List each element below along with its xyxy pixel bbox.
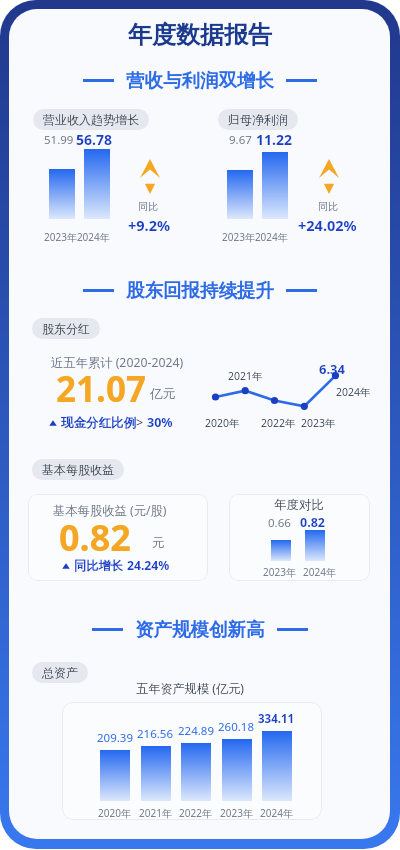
staticText: 营收与利润双增长 (126, 69, 274, 92)
staticText: 21.07 (56, 365, 146, 413)
staticText: 11.22 (256, 130, 292, 149)
staticText: 0.82 (300, 514, 325, 531)
button[interactable]: 年度对比 (229, 494, 370, 581)
button[interactable]: 基本每股收益 (元/股) (28, 494, 208, 581)
staticText: 6.34 (319, 360, 345, 378)
staticText: 24.24% (127, 557, 170, 574)
staticText: 2022年 (261, 416, 296, 430)
staticText: 216.56 (137, 726, 173, 742)
button[interactable]: 归母净利润 (218, 109, 298, 130)
other: Year over year change (140, 159, 160, 194)
staticText: 近五年累计 (2020-2024) (51, 354, 184, 371)
staticText: 2022年 (179, 806, 212, 820)
staticText: 基本每股收益 (元/股) (53, 502, 167, 519)
staticText: 元 (152, 535, 165, 551)
staticText: 亿元 (150, 386, 176, 402)
staticText: 2023年 (220, 806, 253, 820)
staticText: 2020年 (98, 806, 131, 820)
staticText: 0.66 (268, 515, 291, 531)
staticText: 年度数据报告 (128, 20, 272, 50)
button[interactable]: 基本每股收益 (32, 459, 124, 480)
staticText: 56.78 (76, 130, 112, 149)
staticText: 同比 (318, 200, 338, 213)
staticText: 2021年 (139, 806, 172, 820)
staticText: 营业收入趋势增长 (43, 112, 139, 127)
staticText: 资产规模创新高 (135, 618, 265, 641)
staticText: 2023年 (263, 565, 296, 579)
staticText: 年度对比 (274, 497, 324, 513)
staticText: 2023年 (301, 416, 336, 430)
staticText: 2021年 (228, 369, 263, 383)
staticText: 30% (147, 414, 173, 431)
staticText: 0.82 (59, 513, 131, 562)
staticText: 同比 (138, 200, 158, 213)
staticText: 2024年 (303, 565, 336, 579)
staticText: 股东分红 (42, 321, 90, 336)
staticText: 224.89 (178, 723, 214, 739)
staticText: +9.2% (128, 215, 171, 235)
staticText: 基本每股收益 (42, 462, 114, 477)
staticText: 2024年 (336, 385, 371, 399)
staticText: +24.02% (298, 215, 357, 235)
staticText: 2020年 (205, 416, 240, 430)
staticText: > (136, 414, 144, 431)
staticText: 2024年 (260, 806, 293, 820)
button[interactable]: 营业收入趋势增长 (33, 109, 149, 130)
button[interactable]: 股东分红 (32, 318, 100, 339)
staticText: 同比增长 (74, 558, 123, 573)
staticText: 334.11 (258, 711, 295, 727)
staticText: 股东回报持续提升 (126, 279, 274, 302)
staticText: 9.67 (229, 132, 252, 148)
staticText: 209.39 (97, 730, 133, 746)
staticText: 51.99 (44, 132, 74, 148)
button[interactable]: 209.39 (62, 702, 322, 820)
button[interactable]: 总资产 (32, 662, 88, 683)
other: Year over year change (319, 159, 339, 194)
staticText: 2023年2024年 (222, 230, 288, 244)
staticText: 2023年2024年 (44, 230, 110, 244)
staticText: 总资产 (42, 665, 78, 680)
staticText: 现金分红比例 (61, 415, 136, 431)
staticText: 归母净利润 (228, 112, 288, 127)
staticText: 260.18 (218, 719, 254, 735)
staticText: 五年资产规模 (亿元) (136, 680, 244, 697)
